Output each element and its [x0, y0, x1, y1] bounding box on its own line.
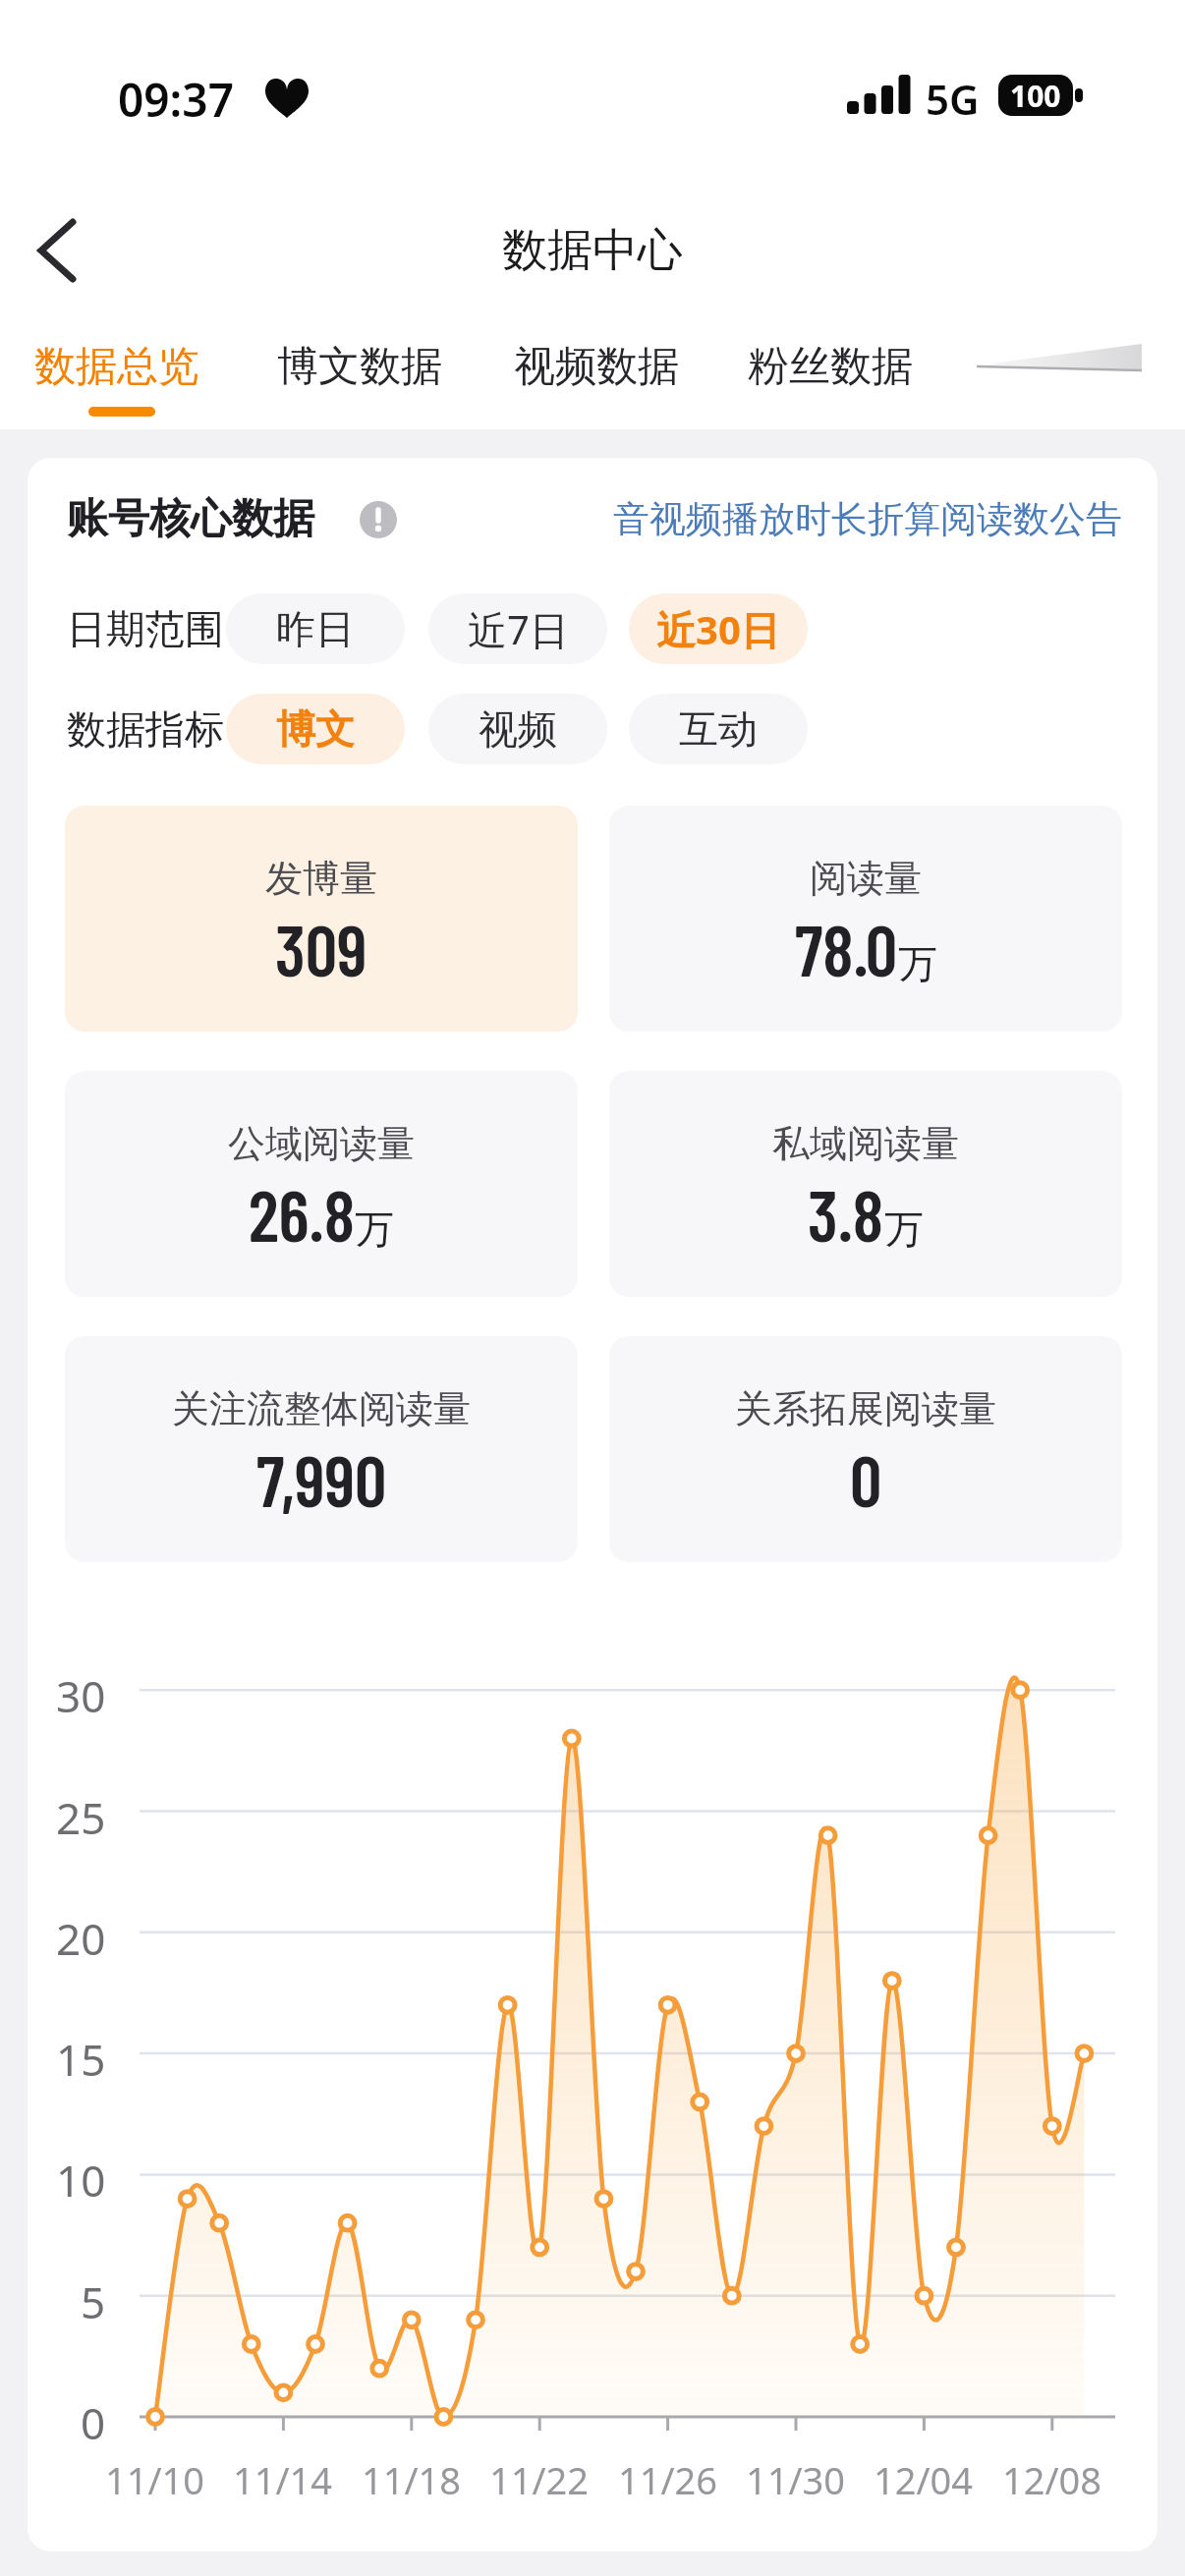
staticText: 视频数据: [514, 341, 679, 393]
staticText: 11/30: [746, 2454, 846, 2501]
staticText: 11/14: [233, 2454, 333, 2501]
staticText: 5G: [926, 71, 980, 127]
staticText: 万: [355, 1204, 394, 1254]
staticText: 30: [56, 1666, 106, 1713]
staticText: 5: [81, 2272, 106, 2320]
staticText: 关系拓展阅读量: [735, 1385, 996, 1432]
button[interactable]: 近7日: [428, 593, 607, 664]
staticText: 09:37: [118, 69, 234, 131]
button[interactable]: 发博量: [65, 806, 578, 1032]
button[interactable]: 私域阅读量: [609, 1071, 1122, 1297]
staticText: 3.8: [808, 1171, 884, 1256]
staticText: 近30日: [656, 602, 780, 656]
button[interactable]: 关注流整体阅读量: [65, 1336, 578, 1562]
button[interactable]: 视频数据: [498, 334, 695, 399]
staticText: 数据总览: [34, 341, 199, 393]
staticText: 昨日: [276, 604, 355, 653]
staticText: 309: [275, 906, 367, 990]
button[interactable]: 互动: [629, 694, 808, 764]
staticText: 20: [56, 1909, 106, 1956]
staticText: 账号核心数据: [67, 493, 314, 545]
staticText: 25: [56, 1788, 106, 1835]
staticText: 数据中心: [502, 222, 683, 279]
staticText: 博文: [276, 704, 355, 754]
button[interactable]: 博文数据: [261, 334, 458, 399]
staticText: 0: [850, 1436, 882, 1521]
staticText: 15: [56, 2030, 106, 2077]
button[interactable]: [20, 206, 94, 295]
button[interactable]: 数据总览: [19, 334, 215, 399]
staticText: 万: [898, 939, 937, 988]
staticText: 私域阅读量: [772, 1120, 959, 1167]
button[interactable]: 阅读量: [609, 806, 1122, 1032]
button[interactable]: 近30日: [629, 593, 808, 664]
staticText: 11/18: [362, 2454, 462, 2501]
staticText: 关注流整体阅读量: [172, 1385, 471, 1432]
button[interactable]: 关系拓展阅读量: [609, 1336, 1122, 1562]
button[interactable]: 视频: [428, 694, 607, 764]
staticText: 11/22: [489, 2454, 590, 2501]
staticText: 78.0: [795, 906, 898, 990]
staticText: 阅读量: [810, 855, 922, 902]
staticText: 公域阅读量: [228, 1120, 415, 1167]
staticText: 博文数据: [277, 341, 442, 393]
staticText: 100: [1010, 76, 1061, 116]
staticText: 粉丝数据: [748, 341, 913, 393]
staticText: 11/26: [618, 2454, 718, 2501]
staticText: 26.8: [249, 1171, 355, 1256]
staticText: 12/08: [1002, 2454, 1102, 2501]
staticText: 12/04: [874, 2454, 974, 2501]
staticText: 7,990: [256, 1436, 387, 1521]
button[interactable]: 昨日: [226, 593, 405, 664]
staticText: 数据指标: [67, 704, 224, 754]
staticText: 0: [81, 2393, 106, 2440]
button[interactable]: 博文: [226, 694, 405, 764]
button[interactable]: 音视频播放时长折算阅读数公告: [28, 495, 1122, 542]
staticText: 音视频播放时长折算阅读数公告: [613, 496, 1122, 542]
staticText: 视频: [479, 704, 557, 754]
staticText: 近7日: [468, 602, 569, 656]
button[interactable]: 粉丝数据: [732, 334, 929, 399]
staticText: 发博量: [265, 855, 377, 902]
staticText: 互动: [679, 704, 758, 754]
staticText: 日期范围: [67, 604, 224, 653]
button[interactable]: 公域阅读量: [65, 1071, 578, 1297]
staticText: 10: [56, 2151, 106, 2198]
staticText: 11/10: [105, 2454, 205, 2501]
staticText: 万: [884, 1204, 924, 1254]
